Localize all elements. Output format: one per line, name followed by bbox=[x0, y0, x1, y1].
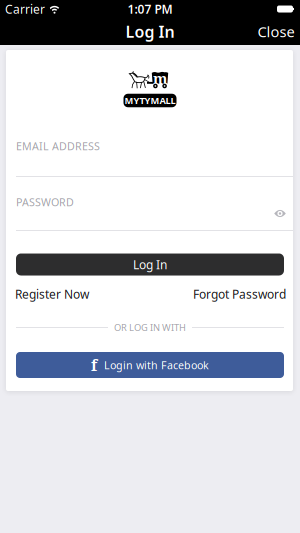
staticText: PASSWORD bbox=[16, 195, 74, 209]
button[interactable]: Close bbox=[250, 16, 300, 47]
staticText: 1:07 PM bbox=[127, 1, 172, 17]
staticText: Close bbox=[257, 22, 294, 41]
button[interactable]: Show password bbox=[270, 205, 290, 222]
button[interactable]: Forgot Password bbox=[193, 286, 286, 302]
staticText: f bbox=[91, 355, 97, 375]
staticText: EMAIL ADDRESS bbox=[16, 139, 100, 153]
staticText: Carrier bbox=[5, 1, 45, 17]
button[interactable]: EMAIL ADDRESS bbox=[16, 139, 293, 177]
staticText: MYTYMALL bbox=[124, 94, 175, 107]
staticText: m bbox=[153, 68, 167, 88]
staticText: Log In bbox=[133, 256, 167, 272]
button[interactable]: Register Now bbox=[15, 286, 89, 302]
button[interactable]: Log In bbox=[16, 253, 284, 275]
staticText: Log In bbox=[125, 21, 174, 42]
staticText: OR LOG IN WITH bbox=[114, 321, 186, 334]
button[interactable]: f bbox=[16, 352, 284, 378]
staticText: Login with Facebook bbox=[104, 358, 209, 372]
staticText: Forgot Password bbox=[193, 286, 286, 302]
staticText: Register Now bbox=[15, 286, 89, 302]
button[interactable]: PASSWORD bbox=[16, 195, 293, 231]
